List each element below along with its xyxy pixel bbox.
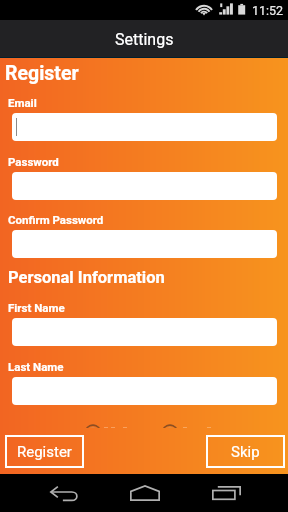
staticText: Last Name (8, 360, 64, 373)
button[interactable] (12, 230, 277, 258)
button[interactable] (12, 172, 277, 200)
staticText: 11:52 (252, 3, 284, 18)
staticText: Confirm Password (8, 213, 104, 226)
button[interactable]: Home (115, 474, 175, 512)
staticText: Personal Information (8, 268, 165, 287)
button[interactable] (12, 377, 277, 405)
staticText: Email (8, 96, 37, 109)
staticText: Register (5, 62, 79, 85)
button[interactable] (12, 318, 277, 346)
staticText: Password (8, 155, 59, 168)
button[interactable]: Back (34, 474, 94, 512)
button[interactable]: Skip (206, 435, 285, 468)
staticText: First Name (8, 301, 65, 314)
button[interactable]: Register (5, 435, 84, 468)
staticText: Skip (231, 443, 260, 461)
button[interactable] (12, 113, 277, 141)
staticText: Register (17, 443, 72, 461)
staticText: Settings (115, 30, 174, 49)
button[interactable]: Recent apps (196, 474, 256, 512)
